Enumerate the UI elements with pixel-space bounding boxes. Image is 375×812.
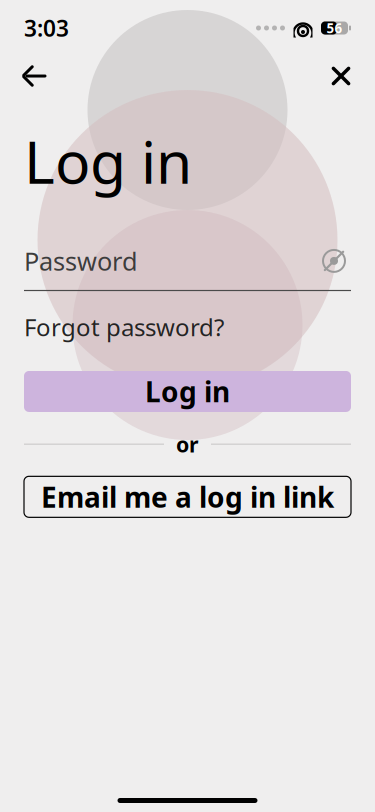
staticText: Forgot password? [24,311,224,343]
button[interactable]: Email me a log in link [24,476,351,517]
button[interactable]: Close [319,54,363,98]
staticText: or [176,430,199,458]
staticText: 3:03 [24,13,69,43]
staticText: Log in [24,122,192,200]
staticText: Password [24,244,138,278]
button[interactable]: Show password [317,246,351,276]
button[interactable]: Forgot password? [24,305,224,349]
button[interactable]: Log in [24,371,351,412]
staticText: Log in [145,373,230,410]
staticText: Email me a log in link [41,478,334,515]
button[interactable]: Back [12,54,56,98]
staticText: 56 [326,19,342,37]
